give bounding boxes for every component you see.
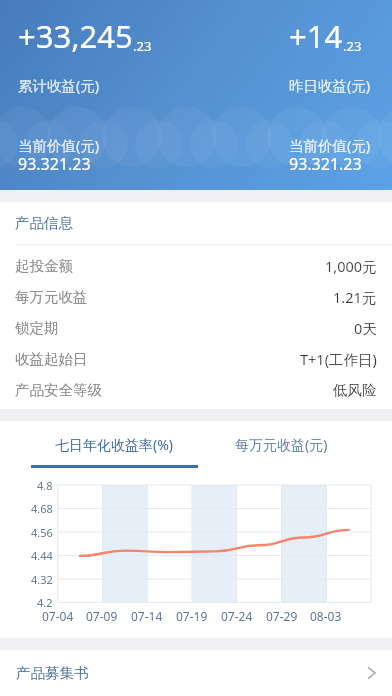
staticText: 1,000元	[325, 256, 377, 276]
staticText: .23	[133, 37, 152, 55]
button[interactable]: 每万元收益(元)	[198, 421, 365, 468]
button[interactable]: 收益起始日	[15, 343, 377, 374]
button[interactable]: 每万元收益	[15, 281, 377, 312]
staticText: 七日年化收益率(%)	[55, 435, 174, 454]
staticText: 07-04	[42, 608, 74, 624]
staticText: 每万元收益	[15, 288, 88, 306]
button[interactable]: 七日年化收益率(%)	[31, 421, 198, 468]
staticText: 1.21元	[333, 287, 377, 307]
staticText: 07-29	[266, 608, 298, 624]
staticText: 07-14	[131, 608, 163, 624]
staticText: 4.68	[31, 501, 53, 516]
staticText: 当前价值(元)	[18, 135, 100, 155]
staticText: T+1(工作日)	[300, 349, 377, 369]
staticText: 07-09	[86, 608, 118, 624]
staticText: 产品募集书	[16, 664, 89, 682]
staticText: 07-19	[176, 608, 208, 624]
staticText: 93.321.23	[18, 153, 91, 175]
staticText: .23	[343, 37, 362, 55]
staticText: +33,245	[18, 15, 133, 57]
staticText: 累计收益(元)	[18, 75, 100, 95]
staticText: 08-03	[310, 608, 342, 624]
button[interactable]: 产品安全等级	[15, 374, 377, 405]
staticText: 07-24	[221, 608, 253, 624]
staticText: 4.8	[37, 478, 53, 493]
staticText: 当前价值(元)	[289, 135, 371, 155]
staticText: 4.44	[31, 548, 53, 563]
staticText: 锁定期	[15, 319, 59, 337]
staticText: 每万元收益(元)	[235, 435, 328, 454]
staticText: 4.2	[37, 595, 53, 610]
staticText: 4.56	[31, 525, 53, 540]
button[interactable]: 锁定期	[15, 312, 377, 343]
staticText: 产品信息	[15, 214, 73, 232]
staticText: 产品安全等级	[15, 381, 102, 399]
staticText: 0天	[354, 318, 377, 338]
button[interactable]: 起投金额	[15, 250, 377, 281]
staticText: 收益起始日	[15, 350, 88, 368]
staticText: 93.321.23	[289, 153, 362, 175]
staticText: 昨日收益(元)	[289, 75, 371, 95]
staticText: 低风险	[333, 381, 377, 399]
staticText: +14	[289, 15, 343, 57]
button[interactable]: 产品募集书	[0, 650, 392, 696]
staticText: 起投金额	[15, 257, 73, 275]
staticText: 4.32	[31, 572, 53, 587]
